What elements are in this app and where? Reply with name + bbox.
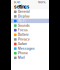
button[interactable]: Display bbox=[11, 14, 49, 19]
button[interactable]: Privacy bbox=[11, 37, 49, 42]
button[interactable]: General bbox=[11, 9, 49, 14]
staticText: Privacy bbox=[18, 38, 30, 41]
staticText: Messages bbox=[18, 47, 35, 50]
button[interactable]: Battery bbox=[11, 32, 49, 37]
staticText: Safari bbox=[18, 42, 27, 46]
button[interactable]: Sounds bbox=[11, 23, 49, 28]
staticText: Settings bbox=[14, 5, 29, 9]
staticText: Mail bbox=[18, 56, 25, 59]
staticText: Phone bbox=[18, 51, 28, 55]
button[interactable]: Focus bbox=[11, 28, 49, 32]
staticText: 9:41 bbox=[14, 1, 20, 4]
staticText: Wi-Fi bbox=[18, 19, 26, 23]
button[interactable]: Messages bbox=[11, 46, 49, 51]
staticText: Battery bbox=[18, 33, 29, 36]
staticText: 100% bbox=[38, 1, 46, 4]
staticText: Focus bbox=[18, 28, 28, 32]
button[interactable]: Safari bbox=[11, 42, 49, 46]
staticText: Sounds bbox=[18, 24, 30, 27]
button[interactable]: Wi-Fi bbox=[11, 19, 49, 23]
staticText: General bbox=[18, 10, 30, 13]
button[interactable]: Phone bbox=[11, 51, 49, 55]
button[interactable]: Mail bbox=[11, 55, 49, 60]
staticText: Display bbox=[18, 15, 30, 18]
